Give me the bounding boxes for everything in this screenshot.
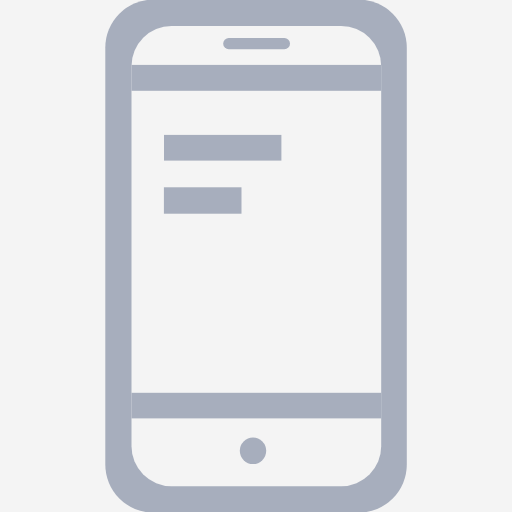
button[interactable]: Smartphone device illustration [0,0,512,512]
